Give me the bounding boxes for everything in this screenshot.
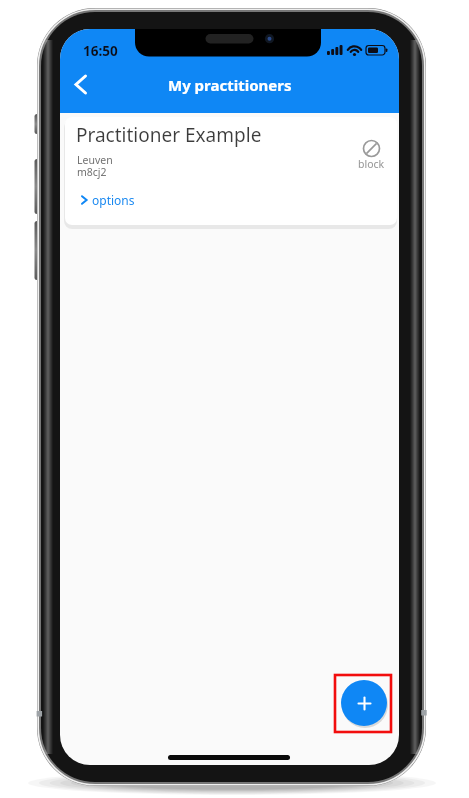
button[interactable] [66,70,98,100]
staticText: My practitioners [168,75,292,95]
button[interactable]: My practitioners [60,75,399,95]
staticText: 16:50 [83,42,118,60]
button[interactable] [341,680,387,726]
staticText: m8cj2 [77,165,107,179]
staticText: Leuven [77,153,113,167]
staticText: options [92,192,135,208]
button[interactable]: block [350,140,392,171]
button[interactable]: Practitioner Example [65,117,397,225]
staticText: Practitioner Example [76,122,262,148]
button[interactable]: options [78,192,135,208]
staticText: block [358,157,385,171]
